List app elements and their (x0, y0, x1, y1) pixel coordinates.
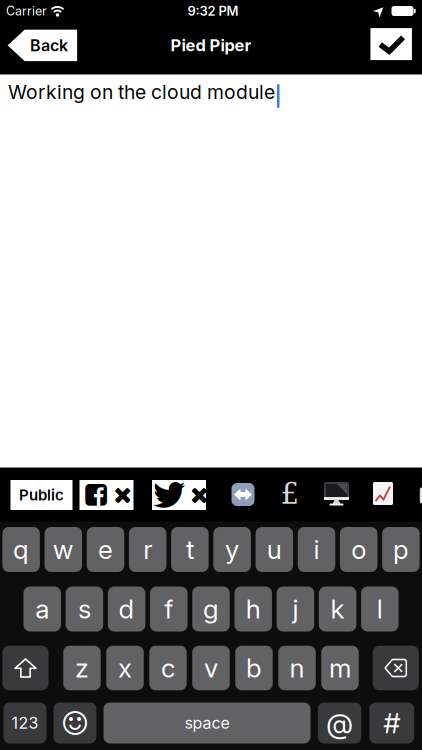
staticText: b (246, 652, 262, 684)
staticText: g (203, 593, 219, 625)
staticText:  (85, 482, 107, 508)
staticText: w (53, 534, 74, 565)
staticText:  (152, 477, 185, 513)
staticText: y (225, 534, 239, 565)
button[interactable]: b (235, 646, 273, 690)
button[interactable]: Resize (231, 483, 254, 506)
staticText: Carrier (6, 3, 47, 18)
button[interactable]: k (319, 586, 356, 631)
button[interactable]: @ (318, 702, 361, 743)
button[interactable]: Shift (2, 646, 48, 690)
button[interactable]: j (277, 586, 314, 631)
button[interactable]: w (45, 527, 82, 572)
button[interactable]: a (23, 586, 61, 631)
staticText: # (383, 706, 400, 740)
button[interactable]: Chart (373, 482, 393, 505)
staticText: l (377, 593, 383, 625)
button[interactable]: n (278, 646, 316, 690)
staticText: z (75, 652, 89, 684)
button[interactable]: v (192, 646, 230, 690)
button[interactable]: Remove Facebook (79, 480, 133, 510)
staticText: t (186, 534, 194, 565)
staticText: j (292, 593, 298, 625)
button[interactable]: d (108, 586, 145, 631)
staticText: o (351, 534, 366, 565)
button[interactable]: p (382, 527, 420, 572)
button[interactable]: r (129, 527, 166, 572)
button[interactable]: h (234, 586, 272, 631)
staticText: k (331, 593, 345, 625)
staticText: Public (19, 486, 64, 504)
button[interactable]: e (87, 527, 124, 572)
staticText: m (329, 652, 351, 684)
staticText: Working on the cloud module (8, 80, 275, 104)
staticText: space (184, 713, 229, 733)
button[interactable]: 123 (3, 702, 46, 743)
staticText: Pied Piper (170, 35, 251, 55)
staticText: u (267, 534, 282, 565)
staticText: r (143, 534, 152, 565)
button[interactable]: i (298, 527, 335, 572)
button[interactable]: z (63, 646, 101, 690)
button[interactable]: Remove Twitter (152, 480, 206, 510)
button[interactable]: t (171, 527, 209, 572)
button[interactable]: Back (8, 30, 77, 61)
staticText: s (78, 593, 91, 625)
button[interactable]: s (66, 586, 103, 631)
staticText: h (246, 593, 261, 625)
staticText: Back (30, 36, 68, 55)
button[interactable]: m (321, 646, 359, 690)
staticText: e (98, 534, 113, 565)
button[interactable]: Delete (373, 646, 419, 690)
staticText: n (289, 652, 304, 684)
button[interactable]: g (192, 586, 230, 631)
button[interactable]: o (340, 527, 377, 572)
button[interactable]: x (106, 646, 144, 690)
button[interactable]: # (369, 702, 414, 743)
staticText:  (63, 709, 87, 737)
button[interactable]: space (103, 702, 310, 743)
staticText: p (393, 534, 409, 565)
staticText: 9:32 PM (187, 3, 238, 19)
staticText: c (161, 652, 175, 684)
button[interactable]: f (150, 586, 188, 631)
staticText:  (190, 484, 208, 506)
button[interactable]: q (2, 527, 40, 572)
button[interactable]: c (149, 646, 187, 690)
button[interactable]: Emoji (53, 702, 96, 743)
button[interactable]: Public (10, 480, 72, 510)
staticText: v (204, 652, 218, 684)
staticText: d (119, 593, 135, 625)
staticText: q (13, 534, 29, 565)
staticText: @ (326, 706, 353, 740)
button[interactable]: Desktop (324, 482, 349, 506)
button[interactable]: u (256, 527, 293, 572)
staticText: i (313, 534, 319, 565)
staticText:  (114, 484, 132, 506)
button[interactable]: Decorate (280, 481, 300, 505)
button[interactable]: Done (370, 28, 412, 60)
button[interactable]: l (361, 586, 399, 631)
staticText: x (118, 652, 132, 684)
button[interactable]: y (213, 527, 251, 572)
staticText: 123 (11, 713, 38, 733)
staticText: f (164, 593, 173, 625)
staticText: £ (280, 476, 299, 510)
staticText: a (35, 593, 49, 625)
